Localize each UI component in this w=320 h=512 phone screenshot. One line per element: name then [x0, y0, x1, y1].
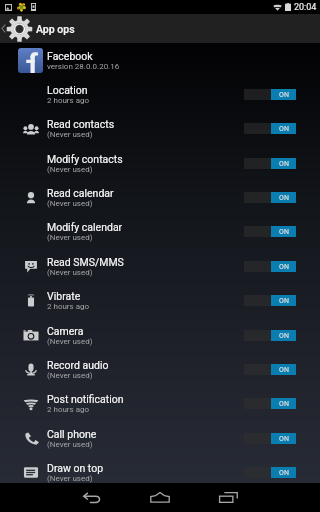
button[interactable]: Toggle Call phone	[244, 433, 296, 444]
button[interactable]: Toggle Draw on top	[244, 467, 296, 478]
button[interactable]: Toggle Modify calendar	[244, 226, 296, 237]
button[interactable]: Toggle Modify contacts	[244, 158, 296, 169]
staticText: (Never used)	[47, 371, 93, 380]
button[interactable]: Facebook	[0, 43, 320, 77]
staticText: (Never used)	[47, 130, 93, 139]
staticText: ON	[279, 332, 289, 340]
button[interactable]: Toggle Record audio	[244, 364, 296, 375]
staticText: Draw on top	[47, 462, 104, 474]
staticText: ON	[279, 400, 289, 408]
button[interactable]: Toggle Read SMS/MMS	[244, 261, 296, 272]
staticText: 2 hours ago	[47, 405, 90, 414]
staticText: ON	[279, 91, 289, 99]
button[interactable]: Modify contacts	[0, 146, 320, 180]
staticText: ON	[279, 228, 289, 236]
staticText: (Never used)	[47, 440, 93, 449]
button[interactable]: Toggle Vibrate	[244, 295, 296, 306]
staticText: 2 hours ago	[47, 302, 90, 311]
button[interactable]: Toggle Location	[244, 89, 296, 100]
button[interactable]: Vibrate	[0, 283, 320, 317]
button[interactable]: Call phone	[0, 421, 320, 455]
staticText: (Never used)	[47, 268, 93, 277]
staticText: 20:04	[294, 2, 317, 13]
staticText: Location	[47, 84, 88, 96]
staticText: Call phone	[47, 428, 97, 440]
staticText: (Never used)	[47, 233, 93, 242]
button[interactable]: Toggle Camera	[244, 330, 296, 341]
staticText: Read calendar	[47, 187, 114, 199]
staticText: ON	[279, 435, 289, 443]
staticText: 2 hours ago	[47, 96, 90, 105]
staticText: ON	[279, 125, 289, 133]
staticText: Modify calendar	[47, 221, 123, 233]
button[interactable]: Toggle Read calendar	[244, 192, 296, 203]
button[interactable]: Toggle Post notification	[244, 398, 296, 409]
button[interactable]: Toggle Read contacts	[244, 123, 296, 134]
staticText: ON	[279, 263, 289, 271]
button[interactable]: Read calendar	[0, 180, 320, 214]
button[interactable]: Read contacts	[0, 111, 320, 145]
staticText: ON	[279, 366, 289, 374]
button[interactable]: Read SMS/MMS	[0, 249, 320, 283]
button[interactable]: Draw on top	[0, 455, 320, 489]
button[interactable]: Recent apps	[194, 483, 262, 512]
staticText: Camera	[47, 325, 84, 337]
staticText: (Never used)	[47, 474, 93, 483]
staticText: version 28.0.0.20.16	[47, 62, 120, 71]
staticText: Vibrate	[47, 290, 81, 302]
staticText: (Never used)	[47, 337, 93, 346]
staticText: Facebook	[47, 50, 93, 62]
staticText: Post notification	[47, 393, 124, 405]
staticText: ON	[279, 469, 289, 477]
staticText: (Never used)	[47, 199, 93, 208]
staticText: Modify contacts	[47, 153, 123, 165]
staticText: App ops	[36, 23, 75, 35]
staticText: Read SMS/MMS	[47, 256, 124, 268]
staticText: ON	[279, 160, 289, 168]
staticText: Record audio	[47, 359, 109, 371]
button[interactable]: Post notification	[0, 386, 320, 420]
button[interactable]: Modify calendar	[0, 214, 320, 248]
button[interactable]: Record audio	[0, 352, 320, 386]
button[interactable]: Home	[126, 483, 194, 512]
staticText: ON	[279, 194, 289, 202]
button[interactable]: Camera	[0, 318, 320, 352]
staticText: ON	[279, 297, 289, 305]
button[interactable]: Navigate up, App ops	[0, 14, 320, 43]
button[interactable]: Location	[0, 77, 320, 111]
staticText: (Never used)	[47, 165, 93, 174]
button[interactable]: Back	[58, 483, 126, 512]
staticText: Read contacts	[47, 118, 115, 130]
